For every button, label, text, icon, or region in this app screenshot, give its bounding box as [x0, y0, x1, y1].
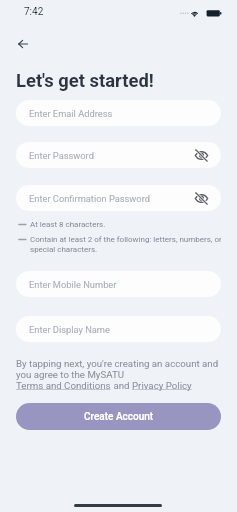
button[interactable]: Create Account: [16, 403, 221, 430]
button[interactable]: Enter Email Address: [16, 100, 221, 126]
button[interactable]: Enter Password: [16, 142, 221, 168]
button[interactable]: Back: [12, 33, 34, 55]
staticText: Enter Confirmation Password: [29, 193, 150, 204]
staticText: Enter Display Name: [29, 324, 110, 335]
staticText: Enter Mobile Number: [29, 279, 117, 290]
button[interactable]: Enter Mobile Number: [16, 271, 221, 297]
button[interactable]: Enter Confirmation Password: [16, 185, 221, 211]
staticText: Enter Password: [29, 150, 94, 161]
button[interactable]: Enter Display Name: [16, 316, 221, 342]
button[interactable]: Terms and Conditions: [16, 380, 111, 391]
button[interactable]: Show password: [195, 149, 208, 162]
staticText: Create Account: [84, 411, 154, 423]
button[interactable]: Privacy Policy: [132, 380, 192, 391]
staticText: and: [111, 380, 132, 391]
staticText: Let's get started!: [16, 70, 154, 92]
staticText: Enter Email Address: [29, 108, 113, 119]
staticText: By tapping next, you're creating an acco…: [16, 358, 221, 380]
staticText: 7:42: [24, 6, 44, 18]
staticText: Contain at least 2 of the following: let…: [30, 235, 221, 254]
staticText: At least 8 characters.: [30, 220, 106, 229]
button[interactable]: Show password: [195, 192, 208, 205]
